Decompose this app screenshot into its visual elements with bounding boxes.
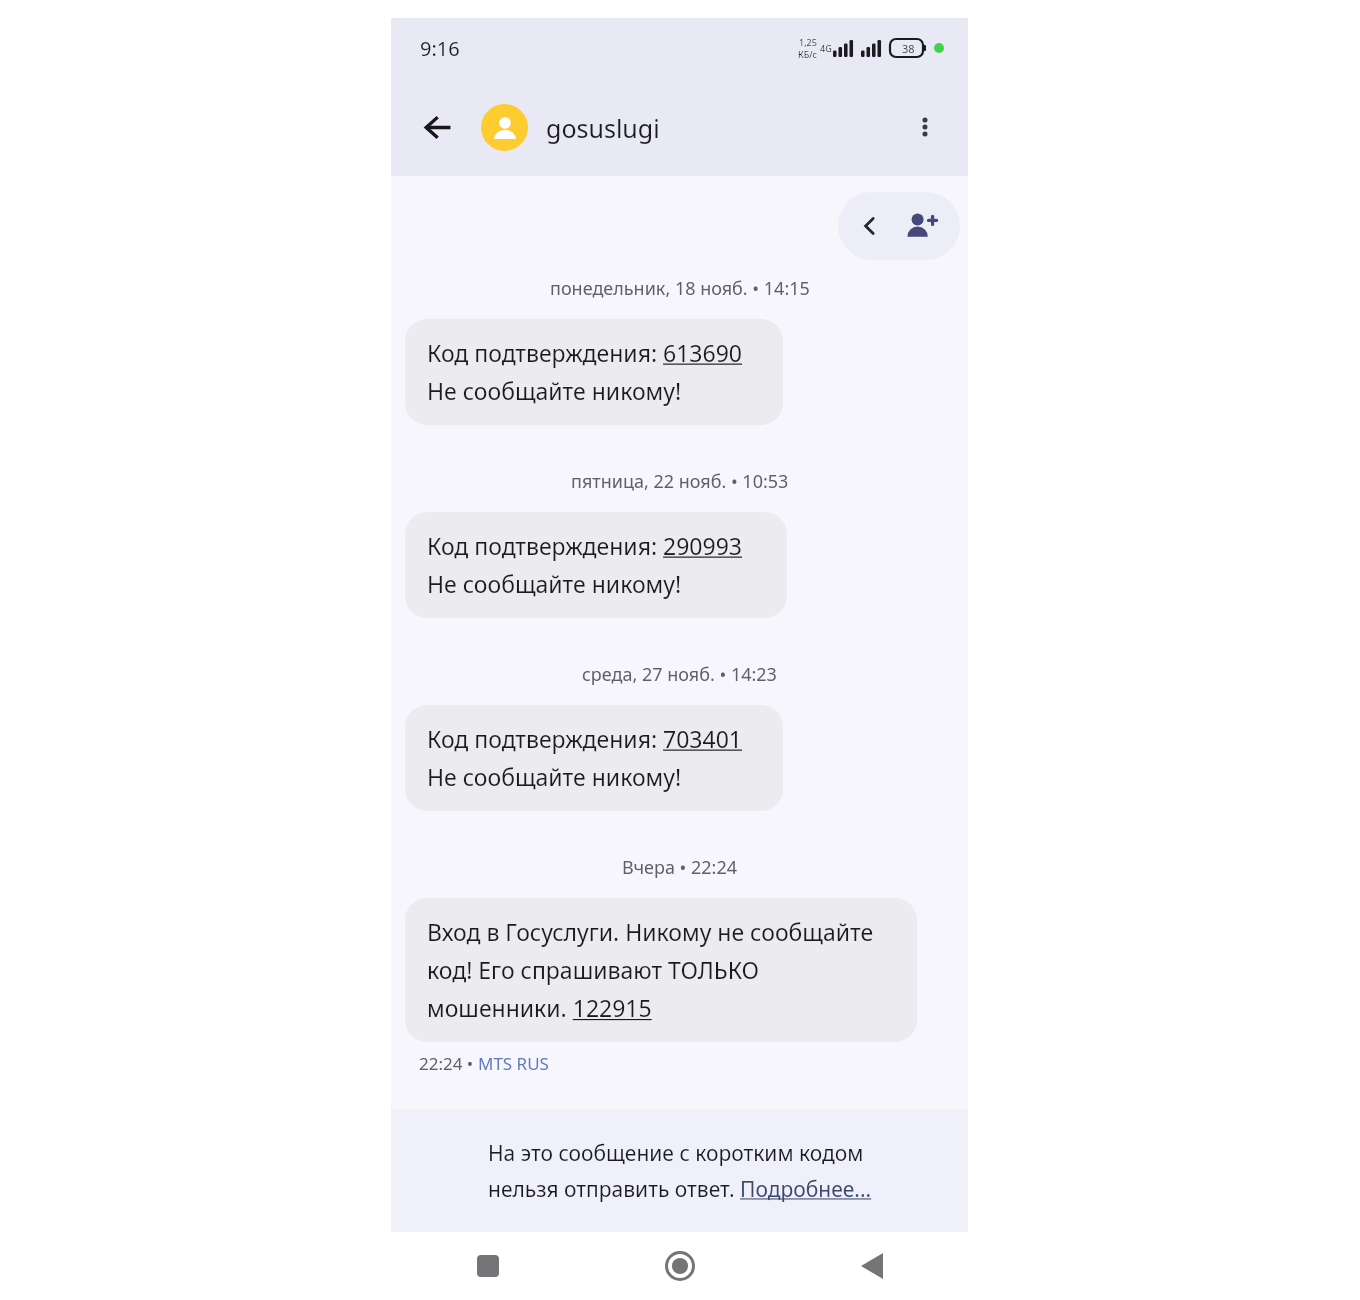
button[interactable]: Код подтверждения: 290993 Не сообщайте н… (405, 512, 787, 618)
staticText: Вчера • 22:24 (622, 855, 738, 880)
staticText: 1,25 (799, 36, 817, 48)
staticText: КБ/с (798, 48, 817, 60)
button[interactable]: Back (413, 103, 461, 151)
button[interactable]: More options (902, 104, 948, 150)
button[interactable]: Recent apps (391, 1232, 584, 1300)
button[interactable]: Back (776, 1232, 968, 1300)
staticText: понедельник, 18 нояб. • 14:15 (550, 276, 810, 301)
button[interactable]: Add contact (838, 192, 960, 260)
button[interactable]: Home (584, 1232, 776, 1300)
staticText: MTS RUS (478, 1052, 549, 1075)
staticText: gosuslugi (546, 111, 660, 145)
staticText: Код подтверждения: 613690 Не сообщайте н… (427, 337, 742, 407)
staticText: На это сообщение с коротким кодом нельзя… (488, 1139, 872, 1203)
button[interactable]: Код подтверждения: 613690 Не сообщайте н… (405, 319, 783, 425)
staticText: 38 (902, 41, 915, 56)
staticText: 4G (820, 42, 832, 54)
staticText: Вход в Госуслуги. Никому не сообщайте ко… (427, 916, 895, 1024)
staticText: Код подтверждения: 290993 Не сообщайте н… (427, 530, 742, 600)
staticText: Код подтверждения: 703401 Не сообщайте н… (427, 723, 742, 793)
staticText: среда, 27 нояб. • 14:23 (582, 662, 777, 687)
button[interactable]: Код подтверждения: 703401 Не сообщайте н… (405, 705, 783, 811)
staticText: 22:24 • (419, 1052, 478, 1075)
button[interactable]: Вход в Госуслуги. Никому не сообщайте ко… (405, 898, 917, 1042)
staticText: 9:16 (420, 35, 460, 62)
staticText: пятница, 22 нояб. • 10:53 (571, 469, 789, 494)
button[interactable]: gosuslugi (481, 104, 660, 151)
